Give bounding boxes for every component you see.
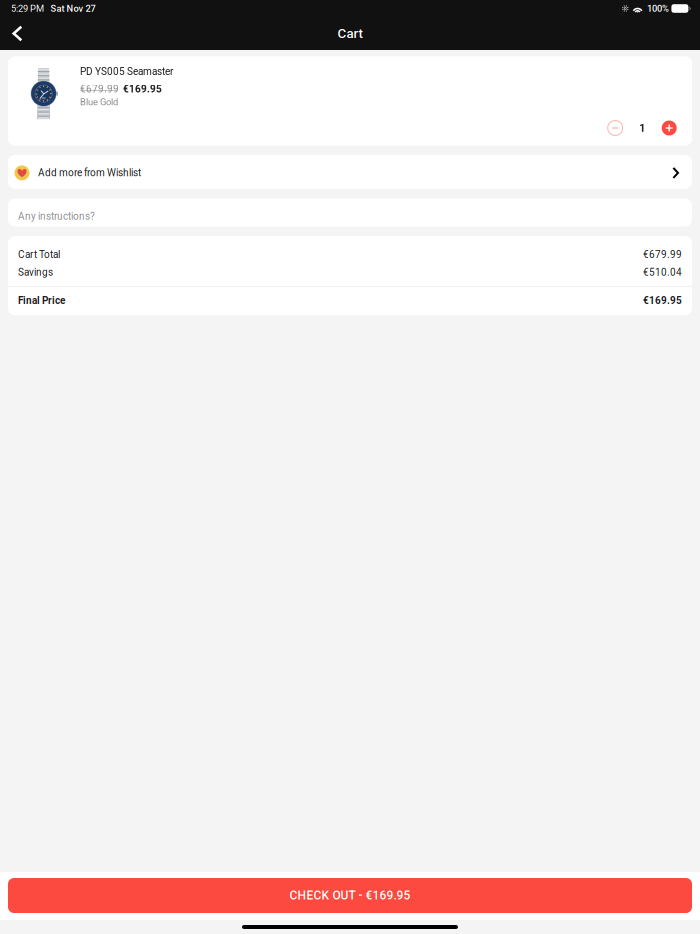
staticText: €169.95 <box>643 295 682 306</box>
button[interactable]: Add more from Wishlist <box>8 155 692 189</box>
staticText: PD YS005 Seamaster <box>80 66 173 77</box>
staticText: Sat Nov 27 <box>50 3 95 14</box>
staticText: €679.99 <box>80 83 119 95</box>
button[interactable]: CHECK OUT - €169.95 <box>8 878 692 913</box>
staticText: €679.99 <box>643 249 682 260</box>
staticText: Final Price <box>18 295 65 306</box>
button[interactable]: Decrease quantity <box>605 117 626 138</box>
staticText: Add more from Wishlist <box>38 167 141 179</box>
staticText: CHECK OUT - €169.95 <box>289 888 410 903</box>
staticText: Cart Total <box>18 249 60 260</box>
staticText: Blue Gold <box>80 96 118 107</box>
button[interactable]: Increase quantity <box>659 117 680 138</box>
staticText: 5:29 PM <box>11 3 44 14</box>
staticText: 1 <box>639 122 645 134</box>
staticText: €510.04 <box>643 266 682 278</box>
staticText: 100% <box>647 3 669 14</box>
button[interactable]: Back <box>0 17 44 50</box>
button[interactable]: Any instructions? <box>8 198 692 226</box>
staticText: €169.95 <box>123 83 162 95</box>
staticText: Cart <box>337 26 362 41</box>
staticText: Savings <box>18 266 53 278</box>
staticText: Any instructions? <box>18 210 95 222</box>
